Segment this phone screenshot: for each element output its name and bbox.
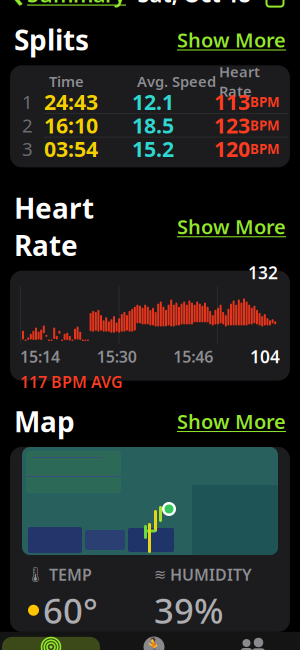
staticText: 15:46 <box>173 346 213 367</box>
staticText: 🏃 <box>143 637 165 650</box>
staticText: Show More <box>177 26 286 53</box>
staticText: 18.5 <box>132 111 174 139</box>
staticText: 104 <box>250 345 280 368</box>
staticText: Summary <box>27 0 126 8</box>
staticText: Avg. Speed <box>137 72 216 91</box>
staticText: 16:10 <box>44 111 98 139</box>
staticText: HUMIDITY <box>170 564 252 585</box>
staticText: 113 <box>214 88 250 116</box>
button[interactable]: Share <box>262 0 288 8</box>
staticText: 15.2 <box>132 135 174 163</box>
staticText: 12.1 <box>132 88 174 116</box>
staticText: 15:30 <box>97 346 137 367</box>
staticText: 1 <box>22 89 33 114</box>
staticText: Heart Rate <box>219 62 260 101</box>
button[interactable]: Show More <box>177 213 286 240</box>
button[interactable]: Summary <box>2 637 100 650</box>
staticText: Splits <box>14 21 89 58</box>
staticText: Map <box>14 403 75 440</box>
staticText: BPM <box>250 93 280 111</box>
staticText: Show More <box>177 408 286 435</box>
staticText: 15:14 <box>20 346 60 367</box>
staticText: 60° <box>43 587 98 633</box>
staticText: Sat, Oct 18 <box>137 0 250 8</box>
staticText: ‹ <box>12 0 24 17</box>
button[interactable]: ‹ <box>12 0 126 17</box>
staticText: Time <box>49 72 84 91</box>
staticText: 🌡 <box>26 566 45 583</box>
staticText: BPM <box>250 116 280 134</box>
button[interactable]: Show More <box>177 408 286 435</box>
staticText: 2 <box>22 113 33 138</box>
staticText: 123 <box>214 111 250 139</box>
staticText: Heart Rate <box>14 189 94 264</box>
staticText: 132 <box>248 261 278 284</box>
button[interactable]: Sharing <box>208 637 298 650</box>
staticText: BPM <box>250 140 280 158</box>
staticText: 39% <box>154 587 224 633</box>
staticText: TEMP <box>49 564 92 585</box>
staticText: 24:43 <box>44 88 98 116</box>
staticText: 3 <box>22 136 33 161</box>
button[interactable]: Show More <box>177 26 286 53</box>
staticText: ↑ <box>265 0 284 2</box>
staticText: 120 <box>214 135 250 163</box>
button[interactable]: 🏃 <box>109 637 199 650</box>
staticText: Show More <box>177 213 286 240</box>
staticText: ≋ <box>154 566 166 583</box>
staticText: 03:54 <box>44 135 98 163</box>
staticText: 117 BPM AVG <box>20 371 123 392</box>
